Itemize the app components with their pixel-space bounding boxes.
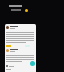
button[interactable]: Badge — [25, 9, 28, 12]
button[interactable]: Create post — [30, 61, 35, 66]
button[interactable]: Follow — [25, 45, 30, 47]
